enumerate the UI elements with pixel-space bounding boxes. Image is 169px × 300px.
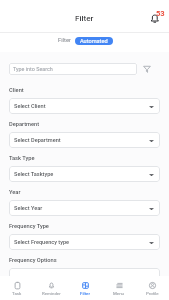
staticText: Filter (80, 291, 91, 296)
button[interactable]: Filter (141, 63, 153, 75)
staticText: Department (9, 121, 40, 128)
staticText: Task (12, 291, 22, 296)
staticText: Task Type (9, 155, 35, 162)
button[interactable]: Task (0, 276, 34, 296)
button[interactable]: Select Client (9, 98, 160, 114)
staticText: Select Frequency type (14, 239, 70, 246)
staticText: Select Year (14, 205, 43, 212)
button[interactable]: Automated (75, 37, 113, 45)
button[interactable]: Filter (68, 276, 102, 296)
staticText: Menu (113, 291, 125, 296)
button[interactable]: Select Tasktype (9, 166, 160, 182)
button[interactable]: Reminder (34, 276, 68, 296)
staticText: Profile (146, 291, 159, 296)
button[interactable]: Select Department (9, 132, 160, 148)
staticText: Frequency Type (9, 223, 49, 230)
button[interactable]: Filter (55, 35, 71, 46)
staticText: Type into Search (13, 66, 53, 72)
staticText: Select Client (14, 103, 46, 110)
staticText: Filter (58, 37, 71, 44)
staticText: 53 (156, 9, 165, 18)
button[interactable]: Profile (136, 276, 169, 296)
button[interactable]: Select Frequency type (9, 234, 160, 250)
button[interactable]: Type into Search (9, 63, 137, 75)
staticText: Frequency Options (9, 257, 57, 264)
staticText: Filter (75, 14, 94, 23)
button[interactable]: Select Year (9, 200, 160, 216)
staticText: Select Department (14, 137, 61, 144)
staticText: Automated (80, 38, 108, 45)
button[interactable]: Menu (102, 276, 136, 296)
staticText: Client (9, 87, 24, 94)
button[interactable] (9, 268, 160, 284)
staticText: Year (9, 189, 21, 196)
button[interactable]: Notifications (148, 9, 164, 25)
staticText: Reminder (42, 291, 61, 296)
staticText: Select Tasktype (14, 171, 54, 178)
